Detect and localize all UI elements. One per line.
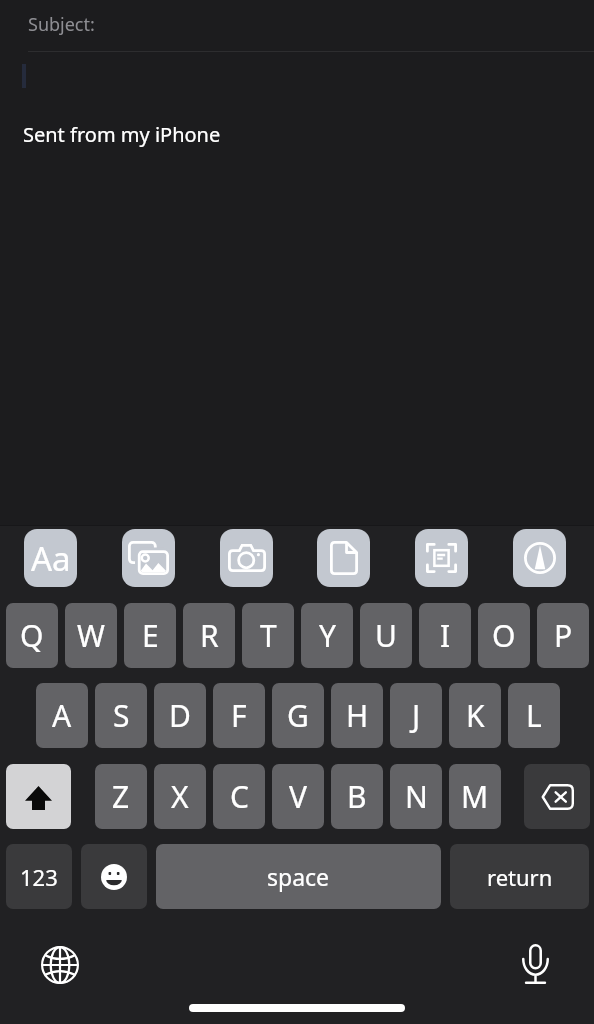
staticText: E xyxy=(142,615,159,656)
staticText: return xyxy=(487,862,553,892)
staticText: X xyxy=(171,776,189,817)
staticText: C xyxy=(230,776,249,817)
staticText: L xyxy=(526,695,542,736)
button[interactable]: doc xyxy=(317,529,370,587)
staticText: P xyxy=(554,615,573,656)
staticText: Sent from my iPhone xyxy=(23,121,221,148)
button[interactable]: S xyxy=(95,683,147,748)
button[interactable]: M xyxy=(449,764,501,829)
staticText: V xyxy=(289,776,307,817)
staticText: R xyxy=(200,615,219,656)
button[interactable]: 123 xyxy=(6,844,72,909)
button[interactable]: J xyxy=(390,683,442,748)
staticText: N xyxy=(405,776,428,817)
staticText: M xyxy=(461,776,489,817)
staticText: Aa xyxy=(31,536,71,581)
button[interactable]: Y xyxy=(301,603,353,668)
button[interactable]: T xyxy=(242,603,294,668)
staticText: Subject: xyxy=(28,12,95,37)
button[interactable]: X xyxy=(154,764,206,829)
button[interactable]: D xyxy=(154,683,206,748)
staticText: B xyxy=(347,776,367,817)
staticText: F xyxy=(231,695,247,736)
button[interactable]: P xyxy=(537,603,589,668)
staticText: Y xyxy=(319,615,336,656)
staticText: K xyxy=(466,695,485,736)
button[interactable]: E xyxy=(124,603,176,668)
staticText: S xyxy=(113,695,130,736)
button[interactable]: A xyxy=(36,683,88,748)
staticText: O xyxy=(492,615,516,656)
staticText: H xyxy=(346,695,369,736)
button[interactable]: C xyxy=(213,764,265,829)
button[interactable]: Q xyxy=(6,603,58,668)
staticText: T xyxy=(260,615,277,656)
button[interactable]: N xyxy=(390,764,442,829)
button[interactable]: return xyxy=(450,844,589,909)
button[interactable]: Switch keyboard xyxy=(41,946,79,984)
button[interactable]: F xyxy=(213,683,265,748)
staticText: Z xyxy=(112,776,130,817)
button[interactable]: V xyxy=(272,764,324,829)
button[interactable]: scan xyxy=(415,529,468,587)
staticText: space xyxy=(267,861,330,892)
button[interactable]: O xyxy=(478,603,530,668)
button[interactable]: Z xyxy=(95,764,147,829)
button[interactable]: L xyxy=(508,683,560,748)
button[interactable]: I xyxy=(419,603,471,668)
staticText: D xyxy=(169,695,191,736)
button[interactable]: W xyxy=(65,603,117,668)
button[interactable]: Dictation xyxy=(522,944,549,984)
staticText: J xyxy=(412,695,421,736)
button[interactable]: Emoji xyxy=(81,844,147,909)
button[interactable]: R xyxy=(183,603,235,668)
button[interactable]: Shift xyxy=(6,764,71,829)
staticText: I xyxy=(440,615,451,656)
button[interactable]: U xyxy=(360,603,412,668)
staticText: G xyxy=(287,695,309,736)
staticText: A xyxy=(52,695,72,736)
button[interactable]: G xyxy=(272,683,324,748)
button[interactable]: camera xyxy=(220,529,273,587)
staticText: Q xyxy=(20,615,44,656)
button[interactable]: photos xyxy=(122,529,175,587)
staticText: 123 xyxy=(20,862,58,892)
button[interactable]: markup xyxy=(513,529,566,587)
button[interactable]: H xyxy=(331,683,383,748)
button[interactable]: Aa xyxy=(24,529,77,587)
button[interactable]: B xyxy=(331,764,383,829)
button[interactable]: K xyxy=(449,683,501,748)
button[interactable]: space xyxy=(156,844,441,909)
button[interactable]: Backspace xyxy=(524,764,590,829)
staticText: U xyxy=(375,615,397,656)
staticText: W xyxy=(77,615,105,656)
